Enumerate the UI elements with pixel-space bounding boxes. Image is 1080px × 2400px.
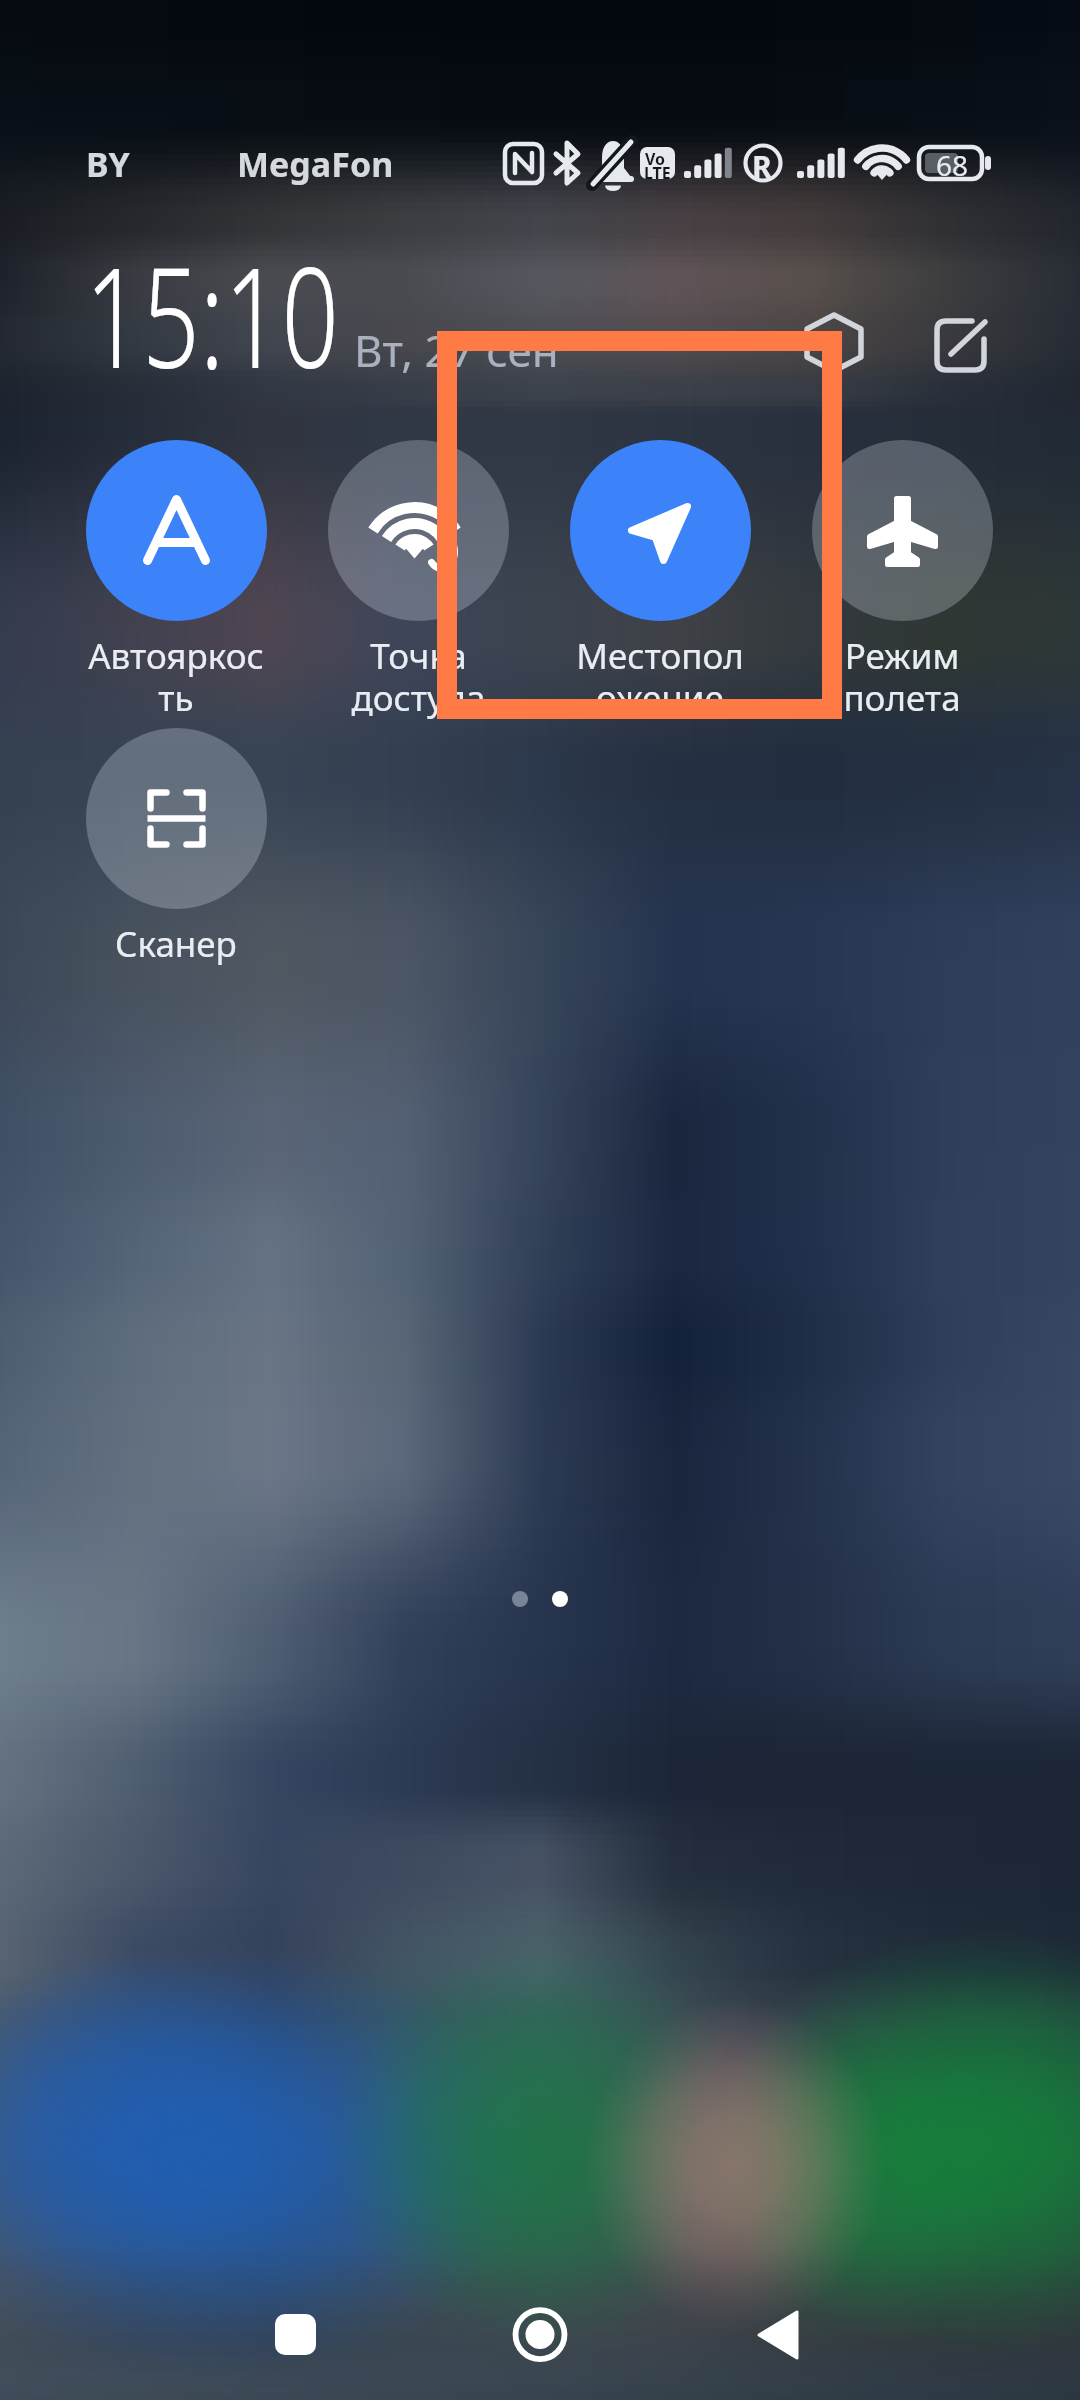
staticText: Режим полета bbox=[843, 632, 961, 721]
staticText: 15:10 bbox=[85, 220, 339, 408]
button[interactable]: Точка доступа bbox=[297, 440, 539, 721]
staticText: MegaFon bbox=[237, 141, 394, 187]
button[interactable]: Edit bbox=[932, 315, 992, 375]
button[interactable]: Сканер bbox=[55, 728, 297, 968]
staticText: R bbox=[752, 146, 772, 187]
staticText: 68 bbox=[936, 146, 969, 184]
staticText: Точка доступа bbox=[351, 632, 486, 721]
button[interactable]: Режим полета bbox=[781, 440, 1023, 721]
staticText: Вт, 27 сен bbox=[354, 320, 559, 380]
staticText: Местопол ожение bbox=[576, 632, 744, 721]
staticText: Автояркос ть bbox=[88, 632, 264, 721]
staticText: LTE bbox=[644, 162, 671, 184]
button[interactable]: Автояркос ть bbox=[55, 440, 297, 721]
staticText: Сканер bbox=[115, 920, 237, 968]
staticText: Vo bbox=[645, 148, 666, 170]
button[interactable]: Home bbox=[490, 2284, 590, 2384]
button[interactable]: Recents bbox=[245, 2284, 345, 2384]
button[interactable]: Местопол ожение bbox=[539, 440, 781, 721]
button[interactable]: Smart home bbox=[803, 312, 865, 374]
staticText: BY bbox=[86, 141, 130, 187]
button[interactable]: Back bbox=[734, 2284, 834, 2384]
